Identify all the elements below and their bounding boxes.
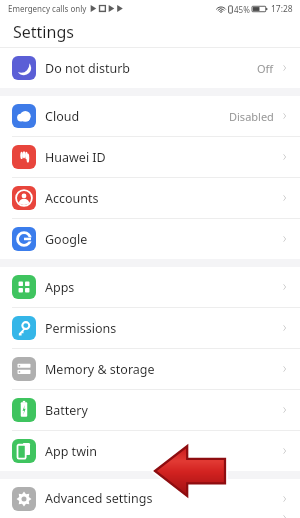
button[interactable]: Huawei ID bbox=[0, 137, 300, 177]
button[interactable]: Cloud bbox=[0, 96, 300, 136]
button[interactable]: Accounts bbox=[0, 178, 300, 218]
button[interactable]: Google bbox=[0, 219, 300, 259]
staticText: Do not disturb bbox=[45, 60, 130, 77]
staticText: Emergency calls only bbox=[8, 3, 87, 14]
button[interactable]: Do not disturb bbox=[0, 48, 300, 88]
staticText: Permissions bbox=[45, 320, 117, 337]
staticText: Apps bbox=[45, 279, 75, 296]
staticText: Memory & storage bbox=[45, 361, 155, 378]
button[interactable]: Memory & storage bbox=[0, 349, 300, 389]
button[interactable]: Apps bbox=[0, 267, 300, 307]
staticText: Battery bbox=[45, 402, 88, 419]
staticText: Google bbox=[45, 231, 88, 248]
staticText: Accounts bbox=[45, 190, 99, 207]
staticText: Disabled bbox=[229, 109, 274, 124]
staticText: App twin bbox=[45, 443, 97, 460]
staticText: Settings bbox=[13, 21, 74, 43]
button[interactable]: App twin bbox=[0, 431, 300, 471]
button[interactable]: Permissions bbox=[0, 308, 300, 348]
staticText: Huawei ID bbox=[45, 149, 106, 166]
staticText: Cloud bbox=[45, 108, 80, 125]
staticText: 17:28 bbox=[271, 3, 293, 15]
staticText: 45% bbox=[234, 4, 250, 15]
button[interactable]: Advanced settings bbox=[0, 479, 300, 518]
staticText: Advanced settings bbox=[45, 490, 153, 507]
button[interactable]: Battery bbox=[0, 390, 300, 430]
staticText: Off bbox=[257, 61, 274, 76]
